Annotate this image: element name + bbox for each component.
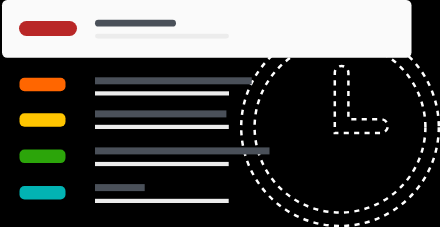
button[interactable]: Wear OS notification illustration (0, 0, 440, 227)
